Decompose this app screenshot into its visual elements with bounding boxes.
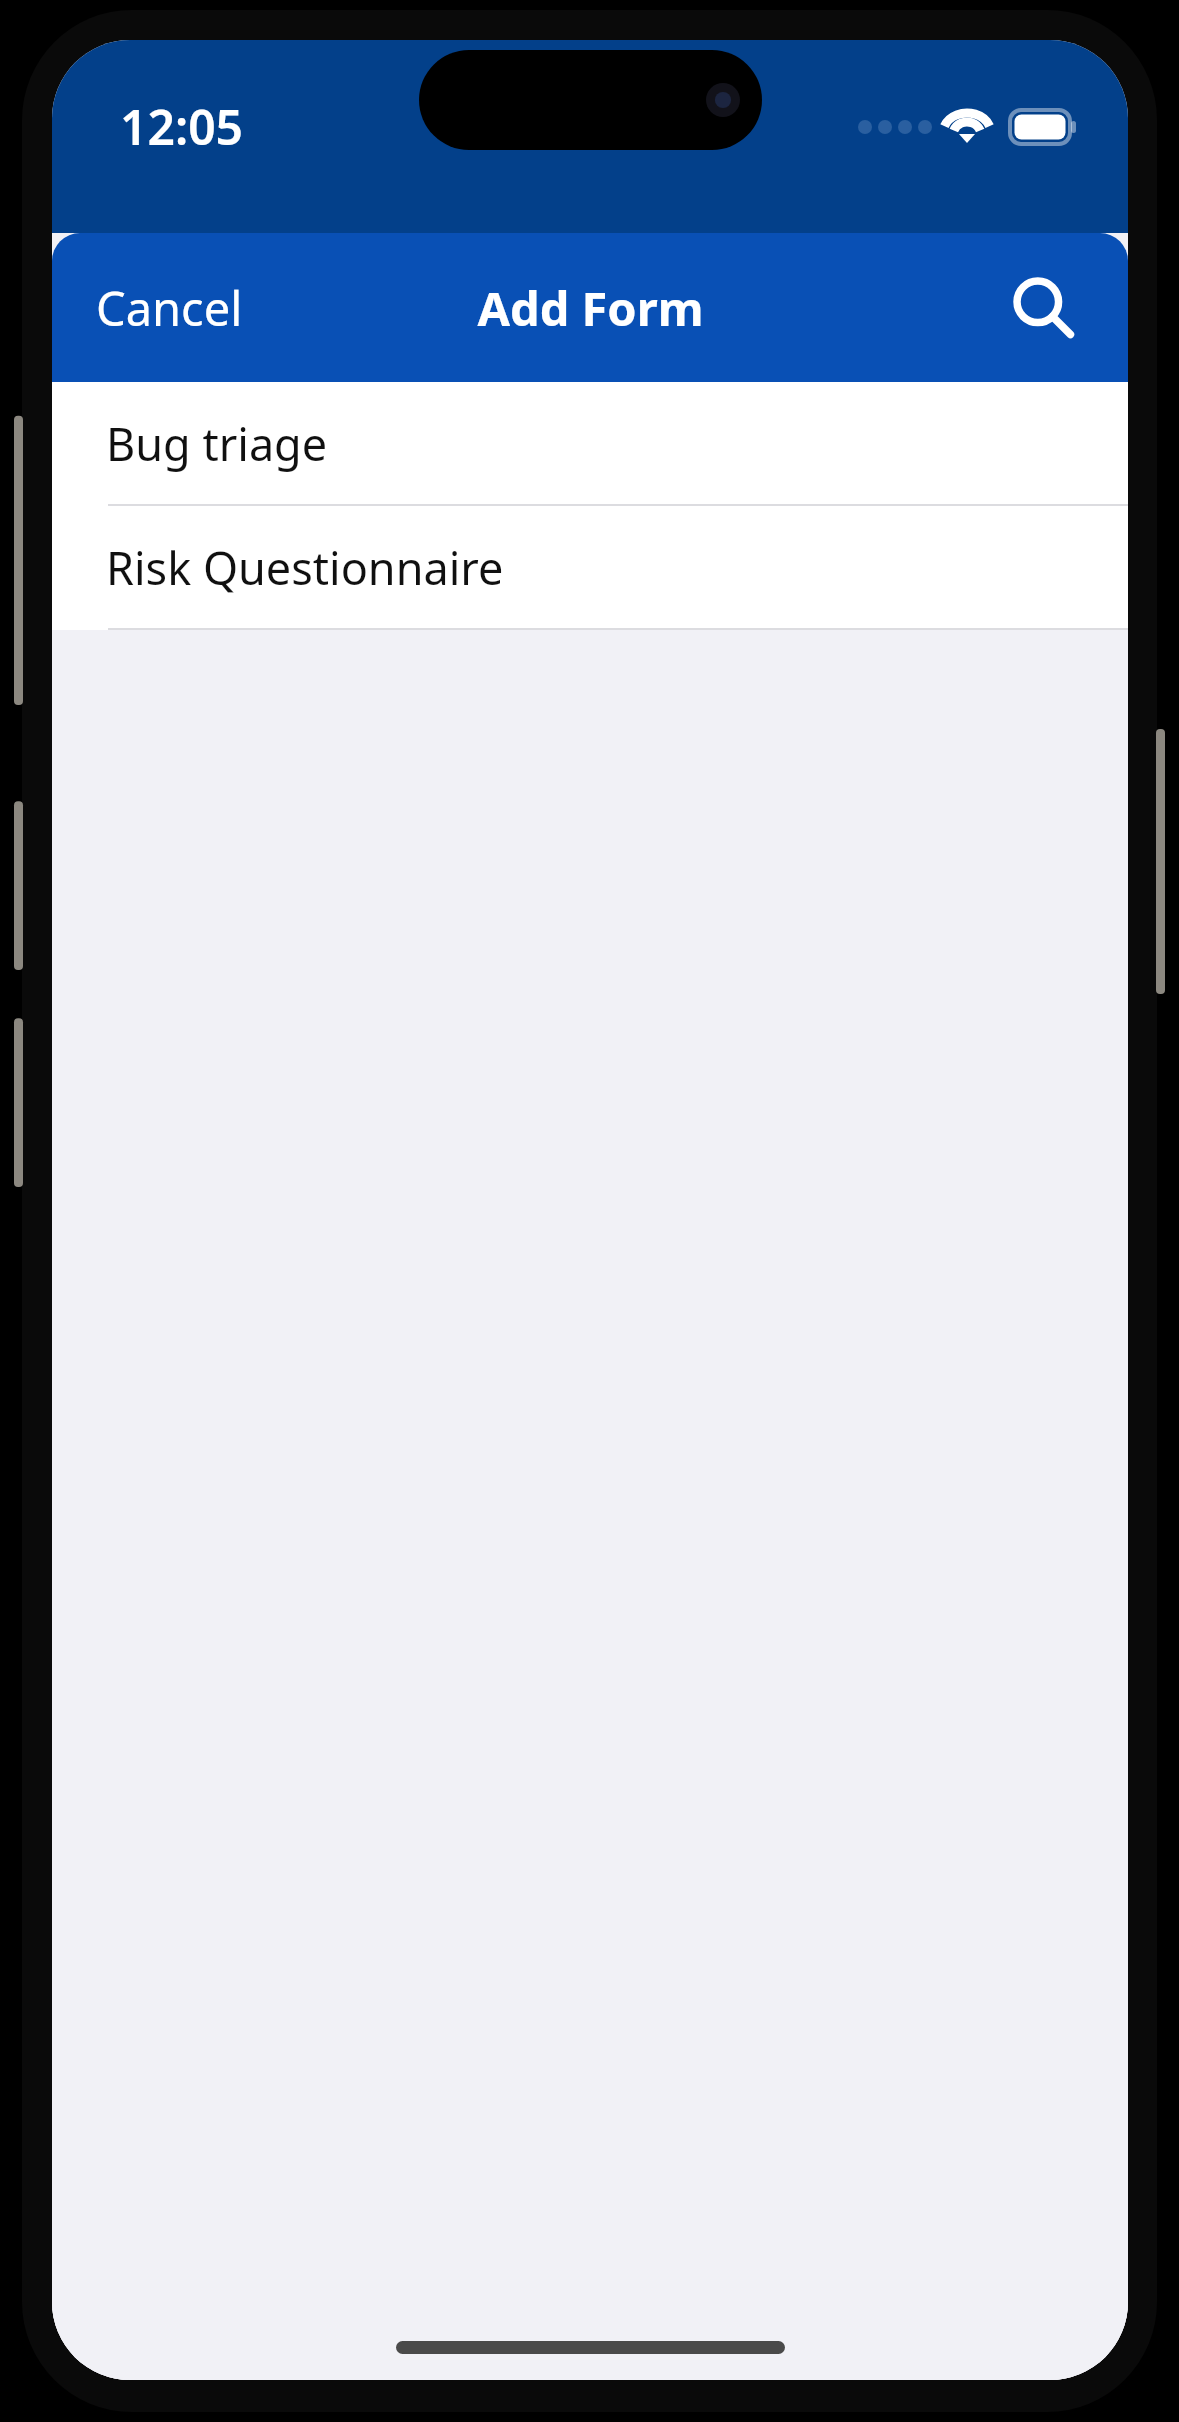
staticText: Add Form <box>477 276 704 340</box>
staticText: Cancel <box>96 276 243 340</box>
button[interactable]: Search <box>994 258 1094 358</box>
button[interactable]: Risk Questionnaire <box>52 506 1128 628</box>
button[interactable]: Cancel <box>52 253 267 363</box>
staticText: Bug triage <box>106 413 328 474</box>
button[interactable]: Bug triage <box>52 382 1128 504</box>
staticText: Risk Questionnaire <box>106 537 504 598</box>
staticText: 12:05 <box>120 94 244 159</box>
